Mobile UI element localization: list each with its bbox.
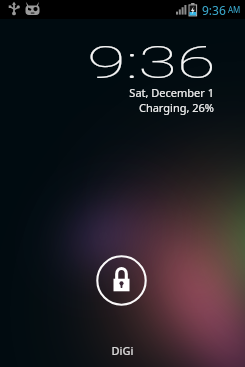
staticText: Sat, December 1 [0, 85, 214, 100]
staticText: Charging, 26% [0, 100, 214, 115]
staticText: 9:36 [202, 2, 226, 18]
staticText: 9:36 [87, 36, 216, 84]
staticText: DiGi [0, 343, 245, 358]
button[interactable]: Unlock [96, 255, 147, 306]
staticText: AM [228, 4, 241, 15]
